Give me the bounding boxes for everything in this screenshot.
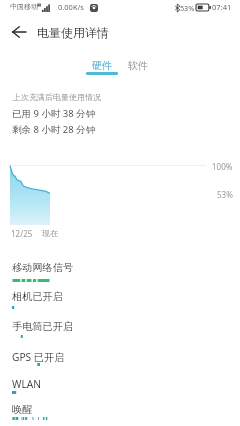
staticText: 53%: [217, 189, 233, 200]
staticText: 已用 9 小时 38 分钟: [12, 107, 96, 120]
button[interactable]: WLAN: [0, 373, 240, 401]
staticText: 上次充满后电量使用情况: [13, 92, 101, 102]
staticText: 硬件: [92, 59, 112, 72]
staticText: 0.00K/s: [58, 2, 84, 12]
staticText: 电量使用详情: [37, 25, 109, 40]
staticText: 12/25: [11, 228, 33, 239]
button[interactable]: 相机已开启: [0, 286, 240, 314]
staticText: 唤醒: [12, 403, 33, 416]
staticText: WLAN: [12, 377, 42, 391]
button[interactable]: 手电筒已开启: [0, 316, 240, 344]
staticText: 软件: [128, 59, 148, 72]
staticText: GPS 已开启: [12, 350, 65, 364]
button[interactable]: GPS 已开启: [0, 346, 240, 374]
button[interactable]: 软件: [122, 55, 154, 75]
staticText: 53%: [180, 3, 195, 13]
button[interactable]: 移动网络信号: [0, 257, 240, 285]
staticText: 07:41: [212, 2, 232, 12]
staticText: 剩余 8 小时 28 分钟: [12, 123, 96, 136]
staticText: 移动网络信号: [12, 261, 74, 274]
staticText: 手电筒已开启: [12, 320, 74, 333]
staticText: 100%: [212, 161, 233, 172]
staticText: 相机已开启: [12, 290, 63, 303]
button[interactable]: 硬件: [86, 55, 118, 75]
staticText: 中国移动: [10, 2, 38, 11]
button[interactable]: 唤醒: [0, 399, 240, 426]
staticText: 现在: [42, 228, 58, 238]
button[interactable]: Back: [7, 20, 31, 44]
